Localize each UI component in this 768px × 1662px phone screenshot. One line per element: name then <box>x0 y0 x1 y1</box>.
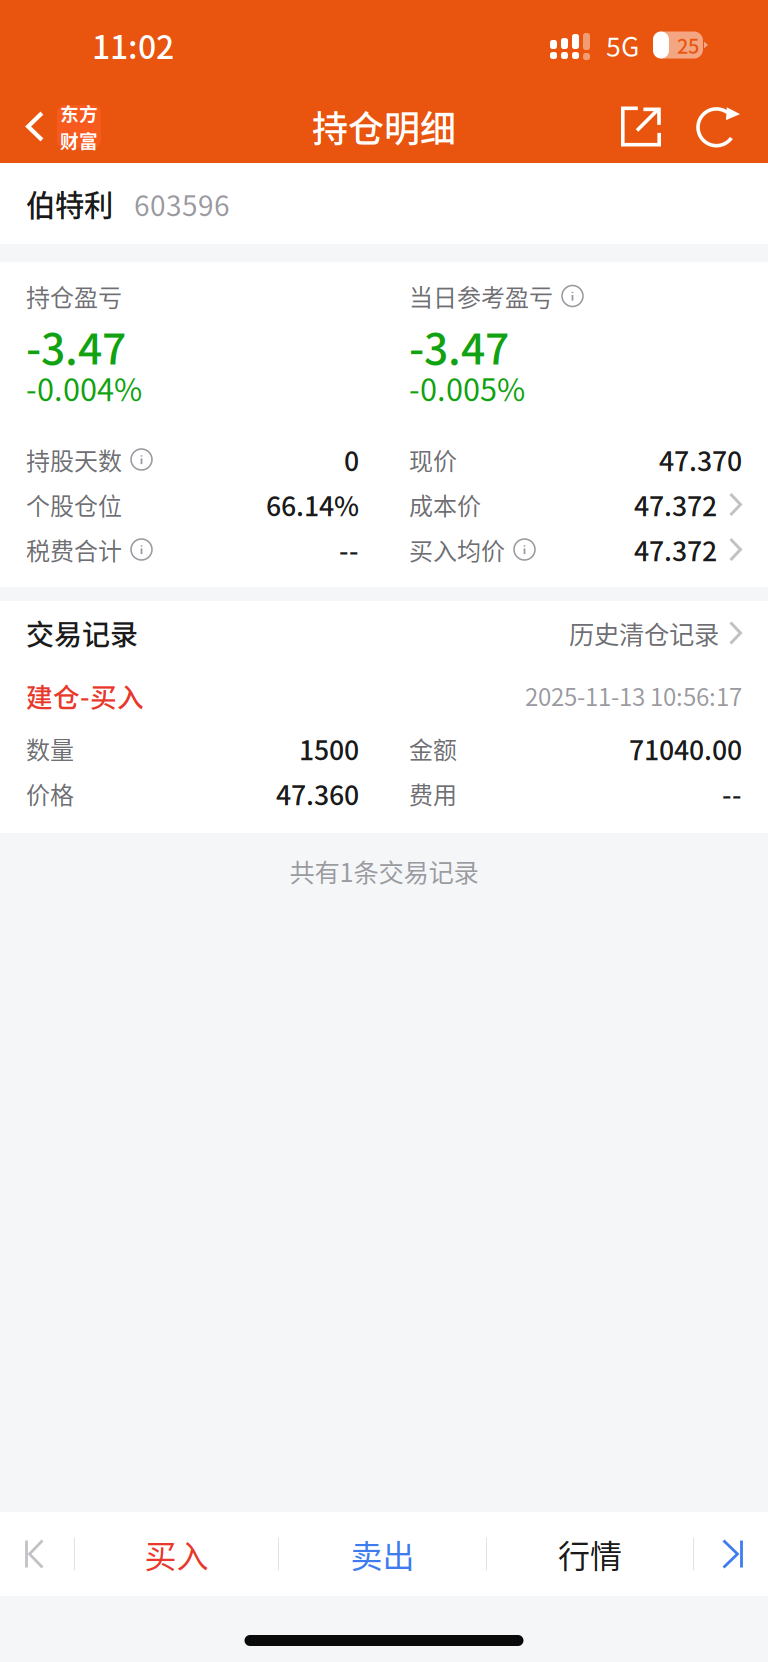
staticText: 买入 <box>144 1531 208 1577</box>
staticText: 0 <box>344 440 359 479</box>
staticText: 伯特利 <box>26 182 113 225</box>
staticText: 费用 <box>409 776 457 811</box>
staticText: 1500 <box>299 729 359 768</box>
staticText: -0.004% <box>26 366 142 410</box>
staticText: 25 <box>677 30 699 59</box>
staticText: 持仓盈亏 <box>26 279 122 313</box>
staticText: 5G <box>606 26 639 64</box>
staticText: 持仓明细 <box>312 100 456 152</box>
staticText: 买入均价 <box>409 532 505 567</box>
staticText: 价格 <box>26 776 74 811</box>
staticText: 603596 <box>134 184 230 224</box>
button[interactable]: 上一只 <box>0 1512 74 1596</box>
staticText: 当日参考盈亏 <box>409 279 553 313</box>
staticText: -- <box>722 774 742 813</box>
button[interactable]: 卖出 <box>279 1512 486 1596</box>
staticText: 47.370 <box>659 440 742 479</box>
staticText: 财富 <box>60 126 98 153</box>
button[interactable]: 历史清仓记录 <box>569 601 742 665</box>
staticText: 历史清仓记录 <box>569 615 719 651</box>
staticText: 交易记录 <box>26 613 138 653</box>
staticText: -3.47 <box>409 315 509 377</box>
staticText: -- <box>339 530 359 569</box>
staticText: 税费合计 <box>26 532 122 567</box>
staticText: 建仓-买入 <box>26 676 144 715</box>
staticText: 66.14% <box>266 485 359 524</box>
staticText: 东方 <box>60 99 98 126</box>
staticText: 成本价 <box>409 487 481 522</box>
staticText: 现价 <box>409 442 457 477</box>
staticText: -3.47 <box>26 315 126 377</box>
staticText: 行情 <box>558 1531 622 1577</box>
button[interactable]: 买入 <box>75 1512 278 1596</box>
button[interactable]: 分享 <box>602 90 680 163</box>
button[interactable]: 行情 <box>487 1512 693 1596</box>
staticText: 47.372 <box>634 530 717 569</box>
button[interactable]: 刷新 <box>680 90 756 163</box>
staticText: -0.005% <box>409 366 525 410</box>
button[interactable]: 返回 东方财富 <box>0 90 115 163</box>
staticText: 数量 <box>26 731 74 766</box>
staticText: 金额 <box>409 731 457 766</box>
staticText: 卖出 <box>350 1531 414 1577</box>
staticText: 个股仓位 <box>26 487 122 522</box>
staticText: 11:02 <box>92 22 174 68</box>
staticText: 47.372 <box>634 485 717 524</box>
staticText: 共有1条交易记录 <box>289 853 478 889</box>
staticText: 持股天数 <box>26 442 122 477</box>
button[interactable]: 下一只 <box>694 1512 768 1596</box>
staticText: 47.360 <box>276 774 359 813</box>
staticText: 71040.00 <box>629 729 742 768</box>
staticText: 2025-11-13 10:56:17 <box>525 678 742 713</box>
